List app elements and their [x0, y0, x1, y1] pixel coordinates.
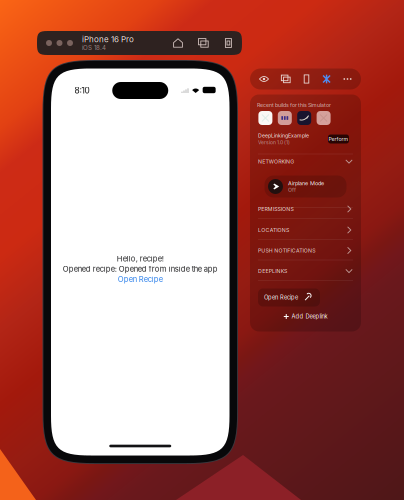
staticText: Hello, recipe! — [117, 254, 164, 263]
staticText: PUSH NOTIFICATIONS — [258, 247, 315, 254]
staticText: Perform — [328, 136, 348, 142]
button[interactable]: NETWORKING — [258, 155, 353, 167]
staticText: iPhone 16 Pro — [82, 34, 134, 44]
staticText: PERMISSIONS — [258, 206, 293, 212]
staticText: Version 1.0 (1) — [258, 139, 290, 145]
staticText: Open Recipe — [264, 294, 297, 301]
staticText: Airplane Mode — [288, 180, 324, 187]
button[interactable]: PUSH NOTIFICATIONS — [258, 244, 353, 256]
button[interactable]: Add Deeplink — [276, 311, 334, 322]
staticText: DeepLinkingExample — [258, 132, 309, 139]
button[interactable]: LOCATIONS — [258, 224, 353, 236]
button[interactable]: Open Recipe — [118, 275, 163, 284]
button[interactable]: Perform — [328, 134, 349, 143]
button[interactable]: Record screen — [224, 38, 233, 48]
staticText: LOCATIONS — [258, 227, 289, 233]
staticText: Opened recipe: Opened from inside the ap… — [63, 264, 218, 274]
button[interactable]: Airplane Mode — [264, 175, 346, 197]
button[interactable]: Open Recipe — [258, 288, 320, 306]
staticText: Add Deeplink — [291, 313, 327, 320]
button[interactable]: Home — [173, 38, 183, 48]
button[interactable]: Appearance — [259, 75, 269, 83]
button[interactable]: DEEPLINKS — [258, 265, 353, 277]
staticText: NETWORKING — [258, 158, 294, 165]
button[interactable]: Screenshot — [198, 38, 209, 48]
staticText: iOS 18.4 — [82, 44, 106, 51]
staticText: 8:10 — [74, 85, 89, 95]
staticText: Off — [288, 187, 296, 193]
button[interactable]: Features — [322, 74, 331, 83]
staticText: Open Recipe — [118, 275, 163, 284]
staticText: DEEPLINKS — [258, 268, 287, 274]
button[interactable]: More options — [343, 74, 352, 83]
staticText: Recent builds for this Simulator — [257, 102, 331, 108]
button[interactable]: Device — [303, 74, 310, 84]
button[interactable]: Screenshot — [281, 74, 291, 83]
button[interactable]: PERMISSIONS — [258, 203, 353, 215]
